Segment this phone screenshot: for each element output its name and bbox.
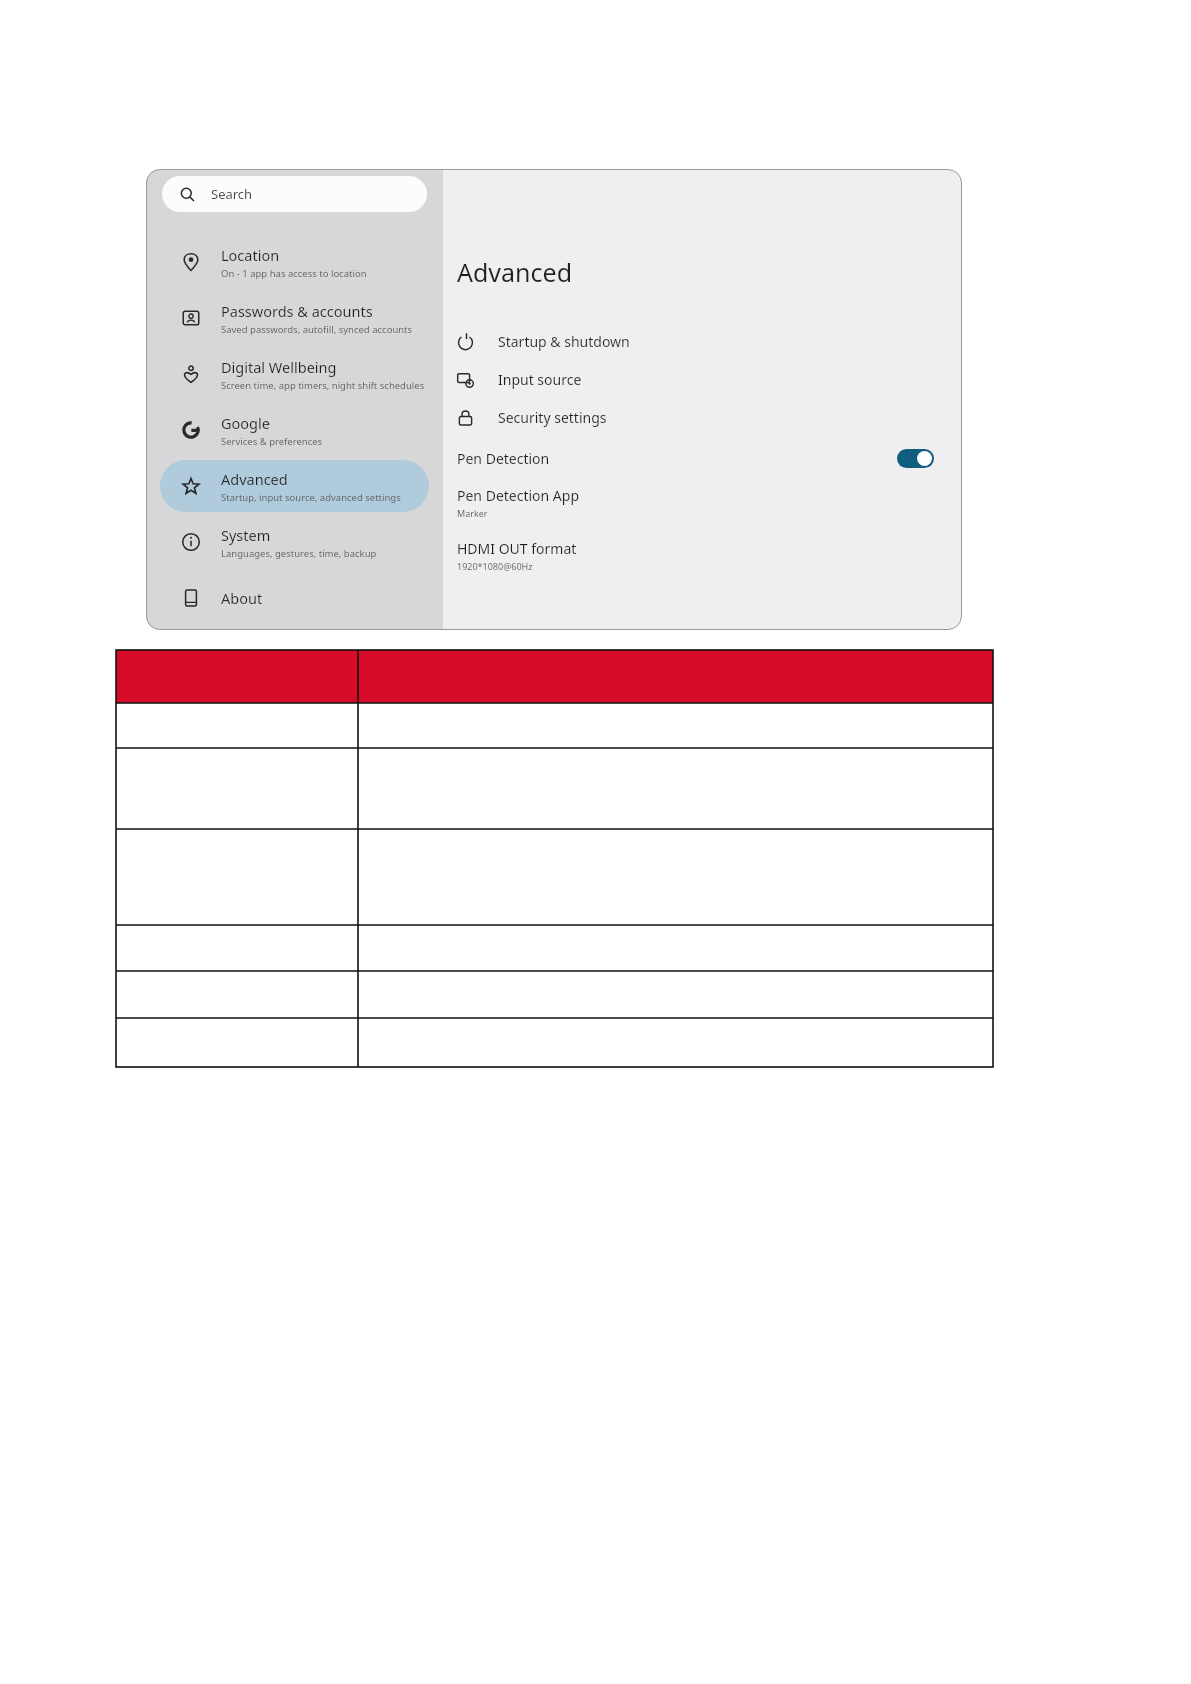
staticText: Input source	[498, 370, 582, 389]
button[interactable]: Startup & shutdown	[443, 322, 962, 360]
staticText: Pen Detection	[457, 449, 550, 468]
staticText: Languages, gestures, time, backup	[221, 547, 377, 560]
button[interactable]: About	[160, 572, 429, 624]
staticText: Search	[211, 185, 253, 203]
staticText: Saved passwords, autofill, synced accoun…	[221, 323, 413, 336]
button[interactable]: Google	[160, 404, 429, 456]
staticText: Services & preferences	[221, 435, 323, 448]
staticText: Passwords & accounts	[221, 301, 373, 321]
button[interactable]: Pen Detection App	[443, 484, 962, 521]
staticText: Startup & shutdown	[498, 332, 630, 351]
staticText: Marker	[457, 507, 488, 519]
staticText: 1920*1080@60Hz	[457, 560, 533, 572]
staticText: Location	[221, 245, 280, 265]
staticText: Digital Wellbeing	[221, 357, 337, 377]
staticText: System	[221, 525, 271, 545]
staticText: Screen time, app timers, night shift sch…	[221, 379, 425, 392]
button[interactable]: Pen Detection toggle, on	[897, 449, 934, 468]
button[interactable]: Search	[162, 176, 427, 212]
staticText: Security settings	[498, 408, 607, 427]
staticText: Advanced	[457, 255, 573, 289]
button[interactable]: Pen Detection	[443, 440, 962, 476]
button[interactable]: Location	[160, 236, 429, 288]
staticText: Advanced	[221, 469, 288, 489]
button[interactable]: Input source	[443, 360, 962, 398]
button[interactable]: Digital Wellbeing	[160, 348, 429, 400]
staticText: About	[221, 588, 263, 608]
staticText: Pen Detection App	[457, 486, 580, 505]
staticText: Startup, input source, advanced settings	[221, 491, 401, 504]
staticText: HDMI OUT format	[457, 539, 577, 558]
button[interactable]: HDMI OUT format	[443, 537, 962, 574]
staticText: On - 1 app has access to location	[221, 267, 367, 280]
button[interactable]: Security settings	[443, 398, 962, 436]
button[interactable]: System	[160, 516, 429, 568]
button[interactable]: Passwords & accounts	[160, 292, 429, 344]
button[interactable]: Advanced	[160, 460, 429, 512]
staticText: Google	[221, 413, 270, 433]
